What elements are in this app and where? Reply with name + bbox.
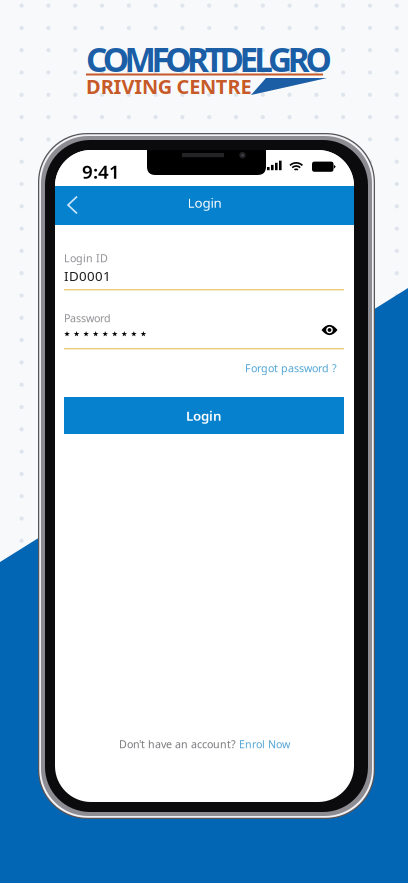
staticText: Password — [64, 311, 111, 325]
staticText: COMFORTDELGRO — [86, 37, 332, 81]
staticText: Login — [187, 194, 221, 211]
staticText: Login — [186, 407, 222, 424]
button[interactable]: Login — [64, 397, 344, 434]
button[interactable]: Show password — [321, 323, 338, 337]
staticText: Forgot password ? — [245, 361, 337, 375]
button[interactable]: Forgot password ? — [245, 361, 337, 375]
staticText: Login ID — [64, 251, 108, 265]
staticText: Enrol Now — [239, 737, 290, 751]
button[interactable]: Back — [63, 190, 93, 220]
staticText: ID0001 — [64, 267, 111, 285]
staticText: 9:41 — [82, 159, 120, 184]
button[interactable]: Enrol Now — [239, 737, 290, 751]
staticText: DRIVING CENTRE — [86, 73, 251, 100]
staticText: Don't have an account? — [119, 737, 236, 751]
